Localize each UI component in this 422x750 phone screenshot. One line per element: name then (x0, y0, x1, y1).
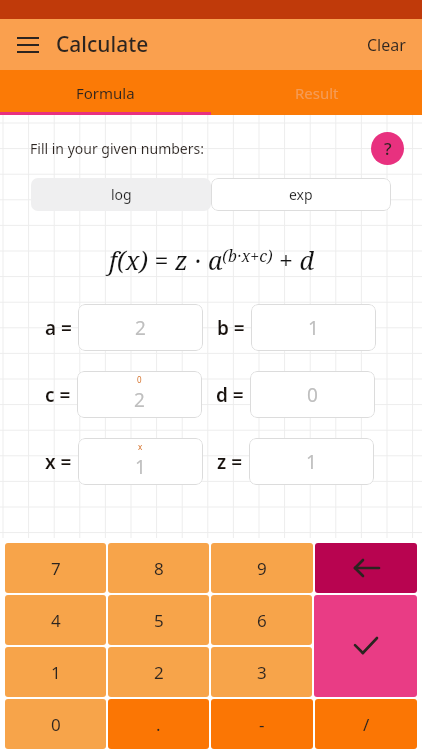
staticText: z = (217, 449, 243, 475)
button[interactable]: - (211, 699, 313, 749)
staticText: Clear (367, 34, 406, 56)
button[interactable]: 8 (108, 543, 209, 593)
staticText: Formula (76, 83, 135, 103)
staticText: Calculate (56, 30, 149, 59)
staticText: 6 (257, 609, 267, 632)
staticText: 1 (51, 661, 61, 684)
staticText: x = (45, 449, 72, 475)
button[interactable]: 1 (251, 304, 376, 351)
staticText: - (259, 713, 265, 736)
staticText: ? (384, 137, 392, 160)
button[interactable]: exp (211, 178, 391, 211)
staticText: log (111, 185, 132, 204)
staticText: 1 (135, 454, 146, 480)
button[interactable]: 2 (108, 647, 209, 697)
button[interactable]: 7 (5, 543, 106, 593)
staticText: a = (45, 315, 72, 341)
button[interactable]: Backspace (315, 543, 417, 593)
staticText: x (138, 441, 143, 452)
button[interactable]: Formula (0, 70, 211, 115)
staticText: c = (45, 382, 71, 408)
button[interactable]: 5 (108, 595, 209, 645)
button[interactable]: Result (211, 70, 422, 115)
button[interactable]: 3 (211, 647, 312, 697)
staticText: 9 (257, 557, 267, 580)
staticText: 0 (307, 382, 318, 408)
button[interactable]: log (31, 178, 211, 211)
staticText: 7 (51, 557, 61, 580)
staticText: f(x) = z · a(b·x+c) + d (109, 243, 314, 277)
button[interactable]: / (315, 699, 417, 749)
button[interactable]: 6 (211, 595, 312, 645)
button[interactable]: 1 (249, 438, 374, 485)
staticText: Result (295, 83, 339, 103)
staticText: 2 (134, 387, 145, 413)
button[interactable]: 0 (77, 371, 202, 418)
staticText: 3 (257, 661, 267, 684)
staticText: 1 (306, 449, 317, 475)
staticText: b = (217, 315, 245, 341)
staticText: Fill in your given numbers: (30, 139, 204, 158)
staticText: . (156, 713, 161, 736)
button[interactable]: Open navigation menu (8, 25, 48, 65)
staticText: 2 (135, 315, 146, 341)
button[interactable]: 9 (211, 543, 313, 593)
staticText: d = (216, 382, 244, 408)
button[interactable]: . (108, 699, 209, 749)
staticText: 4 (51, 609, 61, 632)
staticText: 0 (137, 374, 142, 385)
staticText: 1 (308, 315, 319, 341)
button[interactable]: x (78, 438, 203, 485)
button[interactable]: 0 (5, 699, 106, 749)
button[interactable]: Help (371, 132, 404, 165)
staticText: exp (289, 185, 313, 204)
staticText: 8 (154, 557, 164, 580)
staticText: / (363, 713, 370, 736)
button[interactable]: Clear (351, 24, 422, 66)
button[interactable]: 2 (78, 304, 203, 351)
button[interactable]: 4 (5, 595, 106, 645)
staticText: 5 (154, 609, 164, 632)
button[interactable]: 1 (5, 647, 106, 697)
button[interactable]: Confirm (314, 595, 417, 697)
staticText: 2 (154, 661, 164, 684)
staticText: 0 (51, 713, 61, 736)
button[interactable]: 0 (250, 371, 375, 418)
